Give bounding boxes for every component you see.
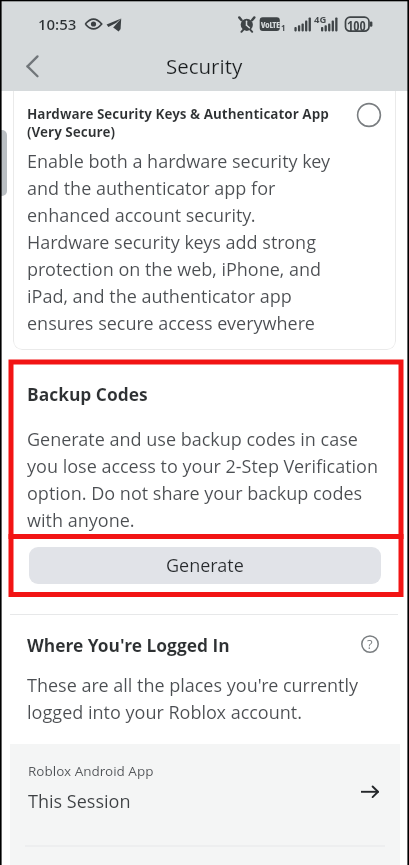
staticText: Enable both a hardware security key and … (27, 149, 337, 336)
staticText: Hardware Security Keys & Authenticator A… (27, 105, 337, 141)
button[interactable]: Help (358, 632, 382, 656)
staticText: These are all the places you're currentl… (27, 673, 387, 725)
staticText: Generate and use backup codes in case yo… (27, 427, 383, 533)
staticText: Generate (166, 553, 244, 578)
button[interactable]: Select option (356, 102, 382, 128)
staticText: 10:53 (38, 14, 77, 34)
staticText: Where You're Logged In (27, 633, 230, 657)
staticText: 100 (347, 17, 366, 35)
staticText: Security (166, 52, 243, 80)
staticText: Backup Codes (27, 382, 148, 406)
staticText: VoLTE (261, 19, 280, 31)
staticText: 4G (314, 13, 327, 26)
button[interactable]: Back (10, 44, 54, 91)
button[interactable]: Roblox Android App (10, 744, 400, 865)
staticText: Roblox Android App (28, 762, 154, 780)
staticText: This Session (28, 789, 131, 814)
button[interactable]: Hardware Security Keys & Authenticator A… (13, 62, 396, 350)
staticText: 1 (281, 22, 286, 33)
staticText: ? (367, 635, 373, 653)
button[interactable]: Generate (29, 547, 381, 584)
